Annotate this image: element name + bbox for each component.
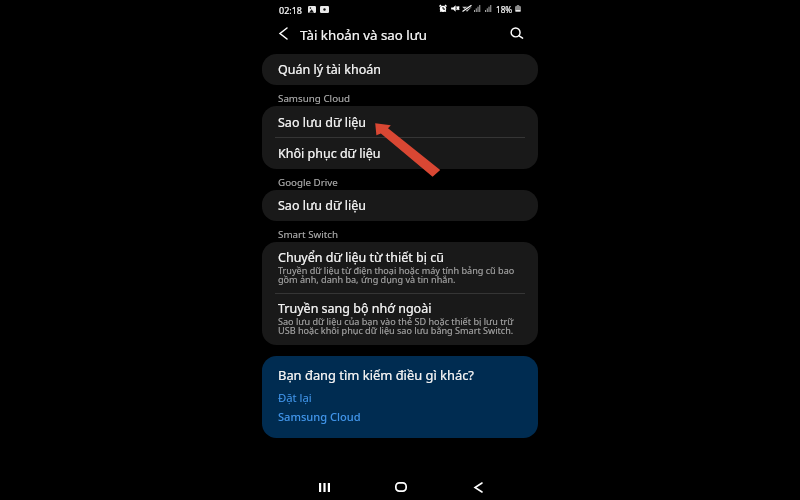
staticText: Samsung Cloud: [278, 409, 361, 424]
button[interactable]: [262, 242, 538, 293]
staticText: Samsung Cloud: [278, 92, 351, 105]
staticText: Bạn đang tìm kiếm điều gì khác?: [278, 366, 474, 384]
staticText: Chuyển dữ liệu từ thiết bị cũ: [278, 249, 444, 266]
staticText: Sao lưu dữ liệu của bạn vào thẻ SD hoặc …: [278, 315, 519, 337]
staticText: Đặt lại: [278, 390, 312, 405]
button[interactable]: Back: [462, 471, 494, 500]
staticText: 18%: [496, 4, 513, 15]
button[interactable]: Recent apps: [308, 471, 340, 500]
staticText: Truyền sang bộ nhớ ngoài: [278, 300, 432, 317]
button[interactable]: [262, 190, 538, 221]
button[interactable]: [262, 54, 538, 85]
button[interactable]: [262, 356, 538, 438]
staticText: Google Drive: [278, 176, 338, 189]
staticText: 02:18: [279, 4, 303, 16]
button[interactable]: Samsung Cloud: [277, 408, 369, 425]
button[interactable]: Đặt lại: [277, 389, 321, 405]
staticText: Quán lý tài khoán: [278, 61, 382, 78]
staticText: Khôi phục dữ liệu: [278, 145, 381, 162]
button[interactable]: Search: [502, 19, 530, 47]
staticText: Smart Switch: [278, 228, 339, 241]
staticText: Sao lưu dữ liệu: [278, 197, 366, 214]
button[interactable]: Back: [269, 19, 297, 47]
button[interactable]: Home: [385, 471, 417, 500]
staticText: Tài khoản và sao lưu: [300, 26, 427, 44]
staticText: Truyền dữ liệu từ điện thoại hoặc máy tí…: [278, 264, 519, 286]
staticText: Sao lưu dữ liệu: [278, 114, 366, 131]
button[interactable]: [262, 293, 538, 344]
button[interactable]: [262, 106, 538, 137]
button[interactable]: [262, 137, 538, 169]
